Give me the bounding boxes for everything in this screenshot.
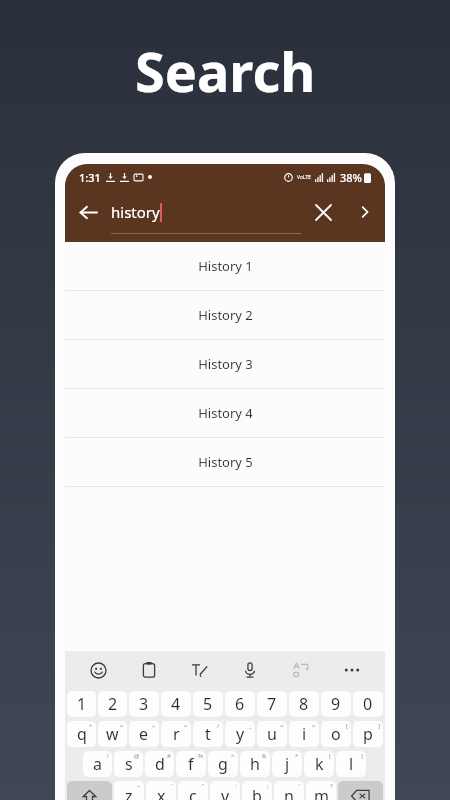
button[interactable]: k [304,751,334,777]
staticText: _ [249,722,252,730]
staticText: [ [346,722,348,730]
button[interactable]: a [83,751,112,777]
staticText: j [285,753,290,775]
staticText: × [120,722,124,730]
staticText: x [157,785,166,800]
staticText: History 2 [198,306,253,324]
button[interactable]: m [306,781,336,800]
button[interactable]: y [225,721,255,747]
staticText: ? [330,782,333,790]
button[interactable]: 2 [98,691,127,717]
staticText: ( [329,752,331,760]
button[interactable]: b [242,781,272,800]
staticText: History 4 [198,404,253,422]
button[interactable]: History 1 [65,242,385,290]
button[interactable]: x [146,781,176,800]
staticText: 1:31 [79,170,101,185]
staticText: ] [378,722,380,730]
staticText: 4 [171,693,181,715]
button[interactable]: History 3 [65,340,385,388]
button[interactable]: z [114,781,144,800]
button[interactable]: s [114,751,143,777]
staticText: Search [135,34,316,108]
button[interactable]: h [240,751,270,777]
button[interactable]: Handwriting [183,653,217,687]
button[interactable]: 0 [353,691,383,717]
staticText: k [315,753,324,775]
staticText: > [312,722,316,730]
button[interactable]: p [353,721,383,747]
staticText: : [235,782,237,790]
staticText: q [77,723,87,745]
button[interactable]: d [145,751,174,777]
staticText: 5 [203,693,213,715]
button[interactable]: 5 [193,691,223,717]
staticText: l [349,753,354,775]
staticText: History 5 [198,453,253,471]
staticText: b [252,785,262,800]
staticText: n [284,785,294,800]
button[interactable]: u [257,721,287,747]
button[interactable]: 9 [321,691,351,717]
staticText: = [184,722,188,730]
button[interactable]: Translate [284,653,318,687]
button[interactable]: 8 [289,691,319,717]
button[interactable]: g [208,751,238,777]
staticText: ` [171,782,173,790]
button[interactable]: o [321,721,351,747]
staticText: < [280,722,284,730]
staticText: @ [134,752,140,760]
staticText: ' [299,782,301,790]
staticText: ~ [137,782,141,790]
staticText: p [363,723,373,745]
staticText: t [205,723,211,745]
staticText: h [250,753,260,775]
button[interactable]: Clear [301,190,345,234]
button[interactable]: Backspace [338,781,383,800]
button[interactable]: 3 [129,691,159,717]
button[interactable]: r [161,721,191,747]
button[interactable]: l [336,751,366,777]
staticText: + [89,722,93,730]
button[interactable]: v [210,781,240,800]
button[interactable]: w [98,721,127,747]
button[interactable]: History 2 [65,291,385,339]
staticText: 3 [139,693,149,715]
button[interactable]: 7 [257,691,287,717]
staticText: w [106,723,119,745]
button[interactable]: Back [65,190,111,234]
button[interactable]: c [178,781,208,800]
button[interactable]: Emoji [81,653,115,687]
staticText: u [267,723,277,745]
button[interactable]: More options [335,653,369,687]
button[interactable]: Shift [67,781,112,800]
button[interactable]: j [272,751,302,777]
staticText: 6 [235,693,245,715]
staticText: History 3 [198,355,253,373]
staticText: s [125,753,133,775]
button[interactable]: 6 [225,691,255,717]
staticText: 9 [331,693,341,715]
staticText: ÷ [152,722,156,730]
button[interactable]: History 5 [65,438,385,486]
button[interactable]: n [274,781,304,800]
button[interactable]: f [176,751,206,777]
staticText: v [221,785,230,800]
button[interactable]: q [67,721,96,747]
button[interactable]: e [129,721,159,747]
button[interactable]: history [111,190,301,234]
button[interactable]: i [289,721,319,747]
staticText: VoLTE [297,174,312,181]
button[interactable]: t [193,721,223,747]
button[interactable]: 1 [67,691,96,717]
button[interactable]: Voice input [233,653,267,687]
staticText: % [198,752,203,760]
staticText: # [167,752,171,760]
button[interactable]: 4 [161,691,191,717]
button[interactable]: Clipboard [132,653,166,687]
button[interactable]: Search [345,190,385,234]
staticText: f [188,753,194,775]
staticText: m [314,785,329,800]
staticText: g [218,753,228,775]
button[interactable]: History 4 [65,389,385,437]
